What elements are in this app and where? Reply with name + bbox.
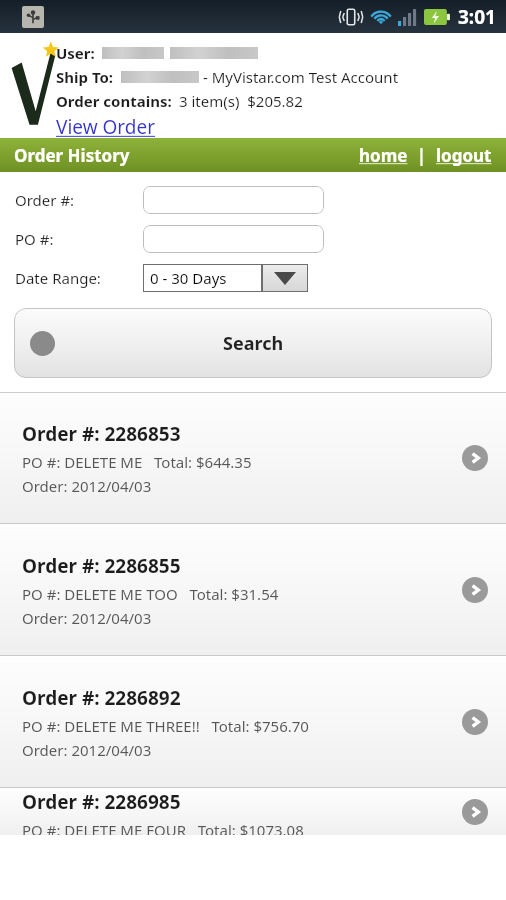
button[interactable]: Order #: 2286985 [0, 789, 506, 835]
button[interactable] [143, 225, 324, 253]
other: Open order 2286892 [462, 709, 488, 735]
staticText: - MyVistar.com Test Account [199, 67, 399, 87]
staticText: 0 - 30 Days [150, 268, 227, 288]
staticText: PO #: DELETE ME Total: $644.35 [22, 452, 252, 472]
staticText: Order: 2012/04/03 [22, 476, 152, 496]
staticText: User: [56, 43, 95, 63]
staticText: PO #: [15, 229, 54, 249]
staticText: Order #: [15, 190, 75, 210]
staticText: Ship To: [56, 67, 114, 87]
other: Open order 2286855 [462, 577, 488, 603]
button[interactable]: 0 - 30 Days [143, 264, 308, 292]
staticText: Search [223, 331, 284, 356]
button[interactable]: Order #: 2286855 [0, 525, 506, 655]
staticText: | [408, 144, 436, 167]
other: Open order 2286985 [462, 799, 488, 825]
button[interactable] [143, 186, 324, 214]
staticText: home [359, 144, 408, 167]
button[interactable]: Order #: 2286853 [0, 393, 506, 523]
staticText: Order #: 2286892 [22, 685, 181, 711]
staticText: PO #: DELETE ME FOUR Total: $1073.08 [22, 820, 304, 835]
staticText: Order History [14, 144, 130, 167]
button[interactable]: Order #: 2286892 [0, 657, 506, 787]
button[interactable]: Search [14, 308, 492, 378]
staticText: Order #: 2286855 [22, 553, 181, 579]
staticText: Order: 2012/04/03 [22, 608, 152, 628]
staticText: PO #: DELETE ME THREE!! Total: $756.70 [22, 716, 309, 736]
staticText: logout [436, 144, 492, 167]
button[interactable]: logout [436, 144, 492, 167]
staticText: Order: 2012/04/03 [22, 740, 152, 760]
staticText: Order #: 2286985 [22, 789, 181, 815]
staticText: 3:01 [458, 4, 496, 30]
staticText: Order contains: [56, 91, 172, 111]
button[interactable]: home [359, 144, 408, 167]
staticText: PO #: DELETE ME TOO Total: $31.54 [22, 584, 279, 604]
staticText: Order #: 2286853 [22, 421, 181, 447]
staticText: View Order [56, 114, 156, 138]
staticText: 3 item(s) $205.82 [179, 91, 303, 111]
other: Open order 2286853 [462, 445, 488, 471]
staticText: Date Range: [15, 268, 101, 288]
button[interactable]: View Order [56, 114, 156, 138]
